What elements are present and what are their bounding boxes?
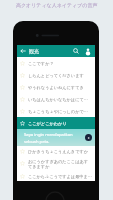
staticText: Saya ingin mendapatkan sebuah peta. [24,132,84,144]
button[interactable]: ひかきうちょこうえんきですか [17,146,95,156]
staticText: 観光 [29,48,39,54]
button[interactable]: Back [17,45,29,57]
staticText: いちはんちかいなちかはにてすぎ [28,97,92,102]
button[interactable]: ちょこうちょやにっしのかですか [17,105,95,117]
button[interactable]: Search [70,45,82,57]
staticText: 高クオリティな人ネイティブの音声 [16,2,98,8]
button[interactable]: Saya ingin mendapatkan sebuah peta. [17,129,95,146]
button[interactable]: Account [82,45,94,57]
button[interactable]: Play audio [85,134,92,141]
button[interactable]: ここからふこうですよは最中まであす [17,171,95,181]
staticText: ひかきうちょこうえんきですか [28,149,88,154]
button[interactable]: おにうかすぎあのたここはあすてきますか [17,156,95,171]
staticText: ここがどこかわかり [28,121,67,126]
button[interactable]: しらんとどってくださいます [17,69,95,81]
button[interactable]: ここですか？ [17,57,95,69]
button[interactable]: ここがどこかわかり [17,117,95,129]
button[interactable]: いちはんちかいなちかはにてすぎ [17,93,95,105]
button[interactable]: やうれなうよいねんにすてき [17,81,95,93]
staticText: ちょこうちょやにっしのかですか [28,109,92,114]
staticText: ここからふこうですよは最中まであす [28,174,92,179]
staticText: ここですか？ [28,61,54,66]
staticText: しらんとどってくださいます [28,73,84,78]
staticText: おにうかすぎあのたここはあすてきますか [28,159,92,169]
staticText: やうれなうよいねんにすてき [28,85,84,90]
